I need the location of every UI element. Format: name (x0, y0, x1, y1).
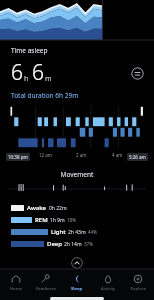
staticText: 6 (11, 58, 23, 87)
button[interactable]: Sleep (62, 270, 92, 296)
staticText: Deep (47, 240, 62, 248)
staticText: 2h 14m (64, 241, 82, 248)
button[interactable]: Activity (93, 270, 123, 296)
staticText: 18% (67, 217, 76, 223)
button[interactable]: Readiness (31, 270, 61, 296)
staticText: 10:38 pm (8, 154, 28, 160)
staticText: 1h 9m (50, 217, 65, 224)
staticText: 4 am (112, 152, 123, 158)
staticText: Explore (131, 286, 146, 292)
staticText: 44% (88, 229, 97, 235)
button[interactable]: Collapse (71, 257, 83, 269)
staticText: Activity (101, 286, 116, 292)
button[interactable]: Deep (11, 239, 144, 249)
staticText: 0h 22m (49, 205, 67, 212)
staticText: Movement (0, 170, 154, 179)
staticText: 6 (32, 58, 44, 87)
staticText: 2h 43m (68, 229, 86, 236)
button[interactable]: Sleep quality info (131, 67, 144, 80)
staticText: REM (35, 216, 48, 224)
staticText: Awake (27, 204, 47, 212)
button[interactable]: Awake (11, 203, 144, 213)
staticText: Light (51, 228, 66, 236)
button[interactable]: Home (1, 270, 31, 296)
staticText: Total duration 6h 29m (11, 91, 79, 100)
staticText: 2 am (76, 152, 87, 158)
staticText: Readiness (36, 286, 56, 292)
staticText: Time asleep (11, 46, 48, 55)
staticText: Home (10, 286, 22, 292)
staticText: 5:26 am (129, 154, 146, 160)
staticText: h (24, 74, 29, 84)
button[interactable]: REM (11, 215, 144, 225)
button[interactable]: Explore (123, 270, 153, 296)
button[interactable]: Light (11, 227, 144, 237)
staticText: 37% (84, 241, 93, 247)
staticText: 12 am (39, 152, 53, 158)
staticText: m (45, 74, 52, 84)
staticText: Sleep (71, 286, 83, 292)
